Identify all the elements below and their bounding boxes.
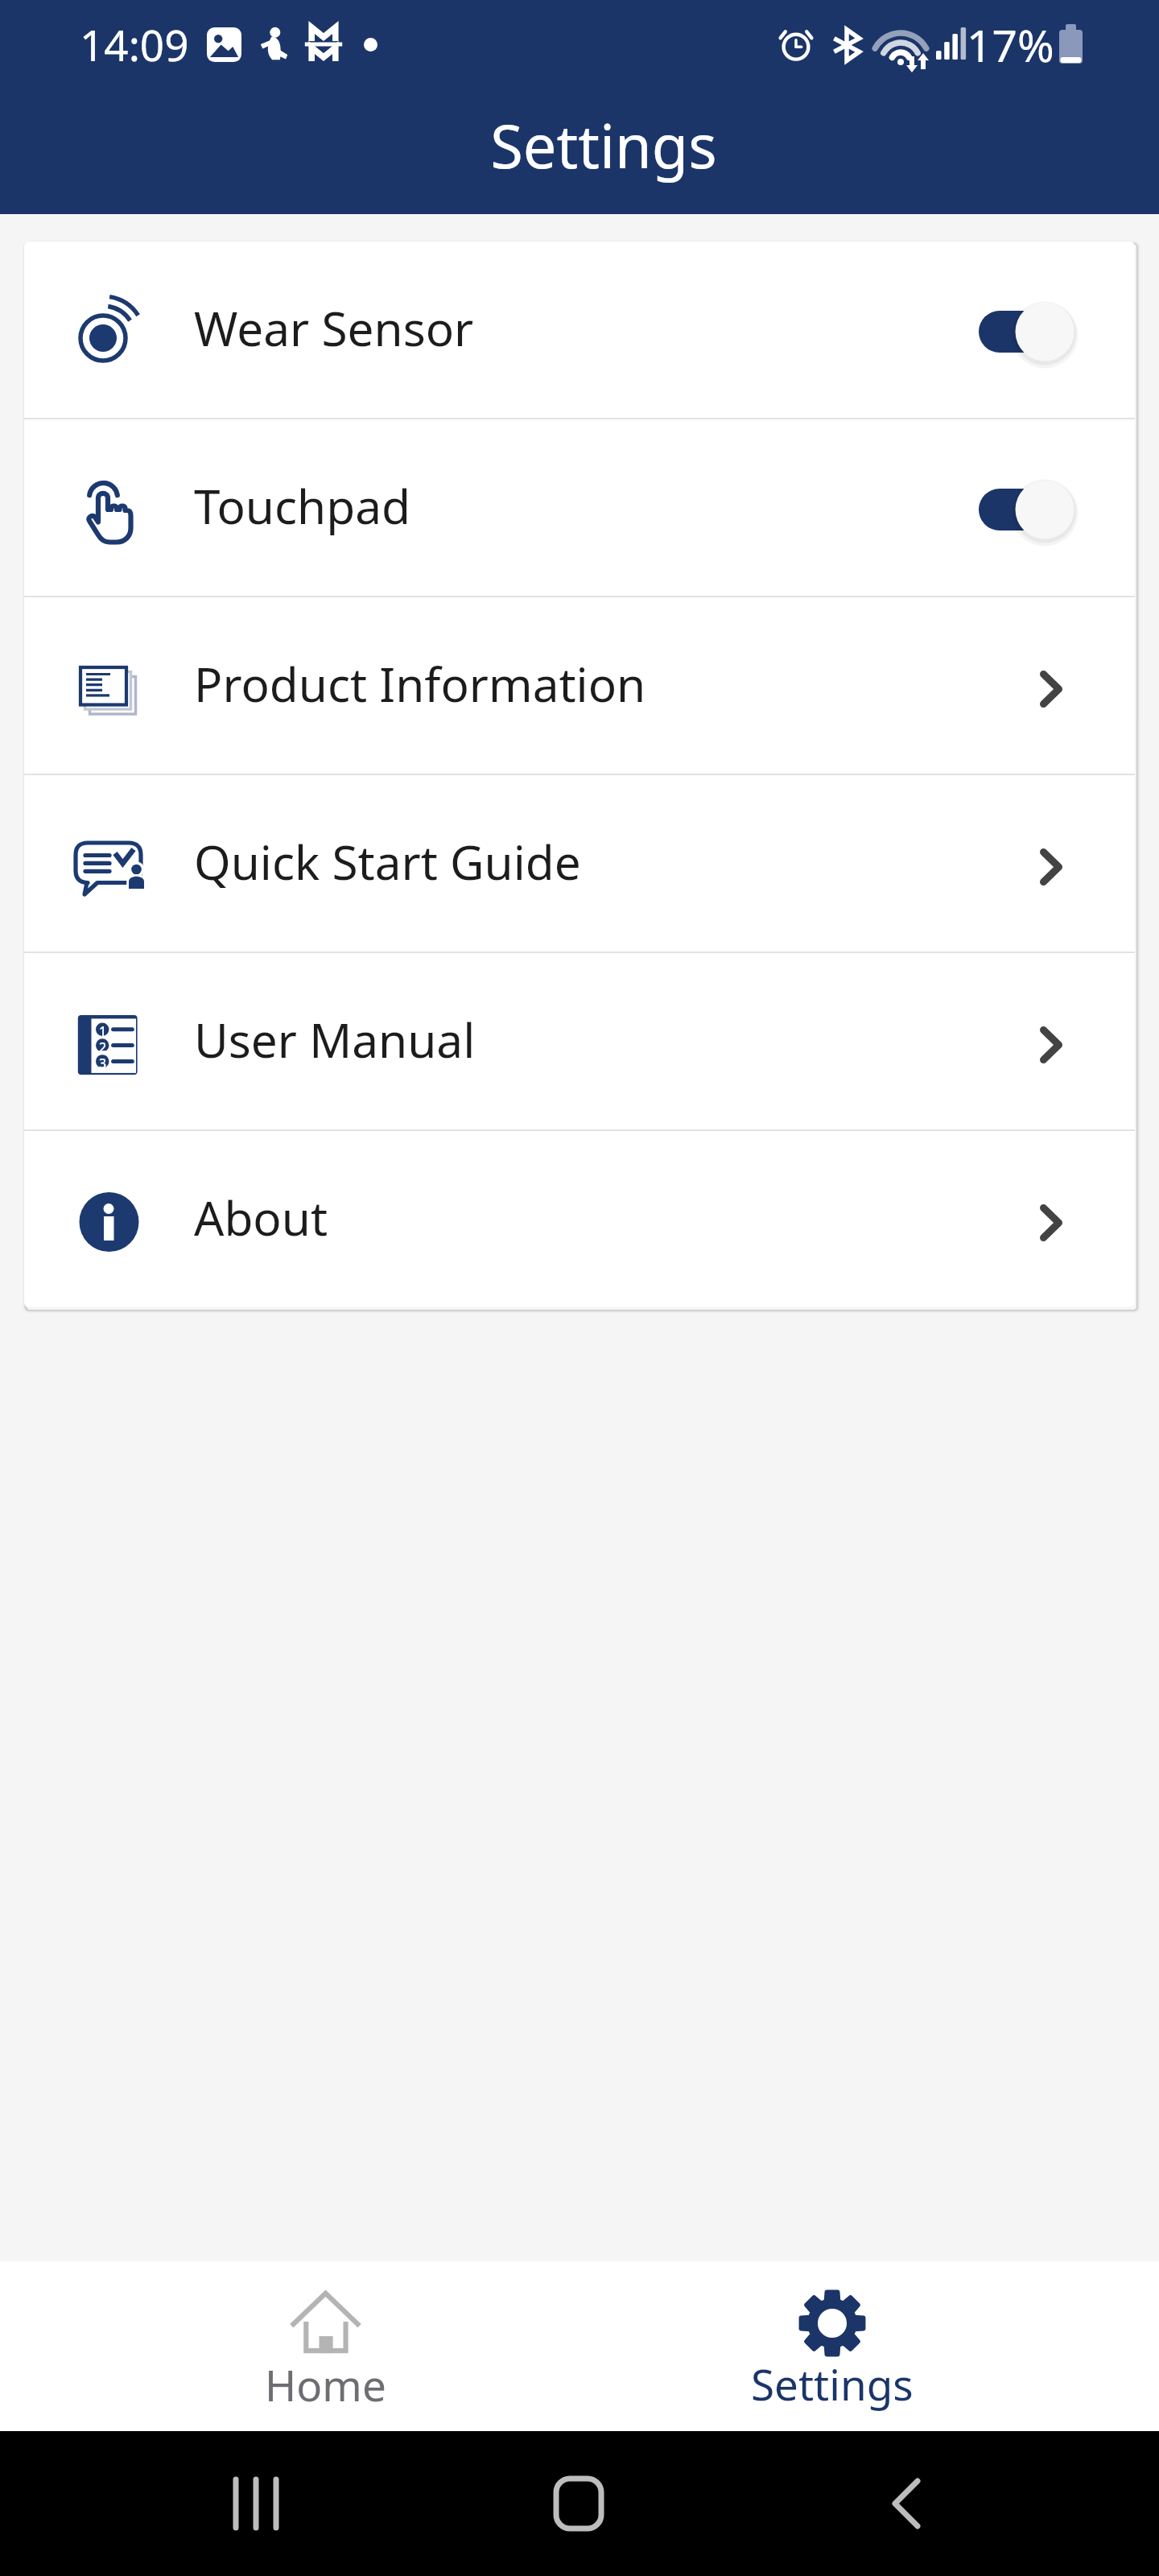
button[interactable]: Home bbox=[498, 2431, 659, 2576]
button[interactable]: Back bbox=[826, 2431, 987, 2576]
button[interactable]: 1 bbox=[24, 953, 1135, 1129]
staticText: User Manual bbox=[194, 1007, 476, 1071]
staticText: 17% bbox=[967, 14, 1054, 75]
staticText: Touchpad bbox=[194, 473, 410, 538]
button[interactable]: About bbox=[24, 1131, 1135, 1307]
button[interactable]: Quick Start Guide bbox=[24, 775, 1135, 952]
button[interactable]: Recent apps bbox=[175, 2431, 336, 2576]
staticText: Product Information bbox=[194, 651, 646, 716]
button[interactable]: Settings bbox=[579, 2261, 1086, 2431]
staticText: Wear Sensor bbox=[194, 295, 474, 360]
staticText: Home bbox=[265, 2355, 386, 2413]
staticText: Settings bbox=[751, 2355, 914, 2413]
staticText: 14:09 bbox=[80, 15, 189, 73]
staticText: Settings bbox=[48, 105, 1159, 186]
button[interactable]: Home bbox=[72, 2261, 579, 2431]
button[interactable]: Wear Sensor bbox=[24, 242, 1135, 418]
button[interactable]: Touchpad bbox=[24, 419, 1135, 596]
button[interactable]: Product Information bbox=[24, 597, 1135, 774]
staticText: Quick Start Guide bbox=[194, 829, 581, 894]
staticText: 3 bbox=[99, 1055, 107, 1072]
button[interactable]: Touchpad switch, on bbox=[979, 465, 1076, 554]
staticText: 1 bbox=[99, 1022, 107, 1040]
staticText: 2 bbox=[99, 1038, 107, 1056]
button[interactable]: Wear Sensor switch, on bbox=[979, 287, 1076, 376]
staticText: About bbox=[194, 1185, 328, 1249]
